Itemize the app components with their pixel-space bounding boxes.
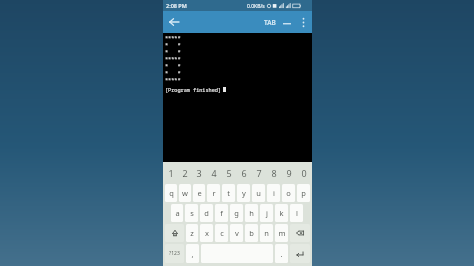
button[interactable]: Back xyxy=(165,13,183,31)
button[interactable]: ?123 xyxy=(165,244,184,263)
button[interactable]: z xyxy=(186,224,198,242)
staticText: d xyxy=(204,208,209,218)
staticText: j xyxy=(266,208,268,218)
staticText: * * xyxy=(165,62,181,69)
button[interactable]: p xyxy=(297,184,310,202)
button[interactable]: j xyxy=(260,204,273,222)
staticText: t xyxy=(227,188,230,198)
button[interactable]: o xyxy=(282,184,295,202)
button[interactable]: . xyxy=(275,244,288,263)
staticText: g xyxy=(234,208,239,218)
button[interactable]: Shift xyxy=(165,224,184,242)
button[interactable]: a xyxy=(171,204,183,222)
button[interactable]: b xyxy=(245,224,258,242)
staticText: ***** xyxy=(165,55,181,62)
staticText: 2 xyxy=(182,167,188,179)
staticText: b xyxy=(249,228,254,238)
button[interactable]: Backspace xyxy=(290,224,310,242)
staticText: ***** xyxy=(165,76,181,83)
staticText: o xyxy=(286,188,291,198)
staticText: l xyxy=(296,208,298,218)
button[interactable]: 2 xyxy=(178,162,192,183)
staticText: c xyxy=(220,228,224,238)
staticText: 1 xyxy=(168,167,174,179)
button[interactable]: TAB xyxy=(261,13,279,31)
button[interactable]: l xyxy=(290,204,303,222)
staticText: , xyxy=(191,249,194,259)
button[interactable]: 9 xyxy=(281,162,296,183)
button[interactable]: ***** xyxy=(163,33,312,162)
button[interactable]: Minimise xyxy=(279,14,295,30)
staticText: e xyxy=(197,188,202,198)
button[interactable]: q xyxy=(165,184,177,202)
button[interactable]: h xyxy=(245,204,258,222)
button[interactable]: w xyxy=(179,184,191,202)
button[interactable]: f xyxy=(215,204,228,222)
staticText: i xyxy=(273,188,275,198)
button[interactable]: d xyxy=(200,204,213,222)
staticText: * * xyxy=(165,41,181,48)
staticText: n xyxy=(264,228,269,238)
staticText: 6 xyxy=(241,167,247,179)
staticText: . xyxy=(280,249,283,259)
button[interactable]: 0 xyxy=(296,162,311,183)
staticText: f xyxy=(220,208,223,218)
button[interactable]: s xyxy=(185,204,198,222)
staticText: h xyxy=(249,208,254,218)
staticText: * * xyxy=(165,69,181,76)
button[interactable]: m xyxy=(275,224,288,242)
staticText: 8 xyxy=(271,167,277,179)
staticText: ?123 xyxy=(169,250,180,257)
button[interactable]: n xyxy=(260,224,273,242)
staticText: TAB xyxy=(264,18,276,27)
staticText: 0.0KB/s xyxy=(247,3,265,10)
staticText: p xyxy=(301,188,306,198)
button[interactable]: i xyxy=(267,184,280,202)
button[interactable]: 8 xyxy=(266,162,281,183)
button[interactable]: x xyxy=(200,224,213,242)
button[interactable]: r xyxy=(207,184,220,202)
staticText: * * xyxy=(165,48,181,55)
staticText: y xyxy=(242,188,246,198)
staticText: m xyxy=(278,228,286,238)
button[interactable]: e xyxy=(193,184,205,202)
staticText: 0 xyxy=(301,167,307,179)
button[interactable]: 7 xyxy=(251,162,266,183)
button[interactable]: 6 xyxy=(236,162,251,183)
staticText: v xyxy=(235,228,239,238)
button[interactable]: g xyxy=(230,204,243,222)
staticText: u xyxy=(256,188,261,198)
staticText: s xyxy=(190,208,194,218)
staticText: ***** xyxy=(165,34,181,41)
staticText: x xyxy=(205,228,209,238)
button[interactable]: y xyxy=(237,184,250,202)
button[interactable]: u xyxy=(252,184,265,202)
button[interactable]: 1 xyxy=(164,162,178,183)
staticText: 3 xyxy=(196,167,202,179)
staticText: 2:08 PM xyxy=(166,2,187,9)
button[interactable]: 5 xyxy=(221,162,236,183)
button[interactable]: 4 xyxy=(206,162,221,183)
button[interactable]: c xyxy=(215,224,228,242)
staticText: [Program finished] xyxy=(165,86,222,93)
staticText: 7 xyxy=(256,167,262,179)
button[interactable]: k xyxy=(275,204,288,222)
button[interactable]: Enter xyxy=(290,244,310,263)
button[interactable]: More options xyxy=(295,14,311,30)
staticText: z xyxy=(190,228,194,238)
staticText: w xyxy=(182,188,188,198)
staticText: 4 xyxy=(211,167,217,179)
button[interactable]: v xyxy=(230,224,243,242)
staticText: k xyxy=(279,208,284,218)
button[interactable]: , xyxy=(186,244,199,263)
staticText: a xyxy=(175,208,180,218)
staticText: 9 xyxy=(286,167,292,179)
button[interactable]: t xyxy=(222,184,235,202)
staticText: 5 xyxy=(226,167,232,179)
button[interactable]: 3 xyxy=(192,162,206,183)
staticText: r xyxy=(212,188,216,198)
staticText: q xyxy=(169,188,174,198)
